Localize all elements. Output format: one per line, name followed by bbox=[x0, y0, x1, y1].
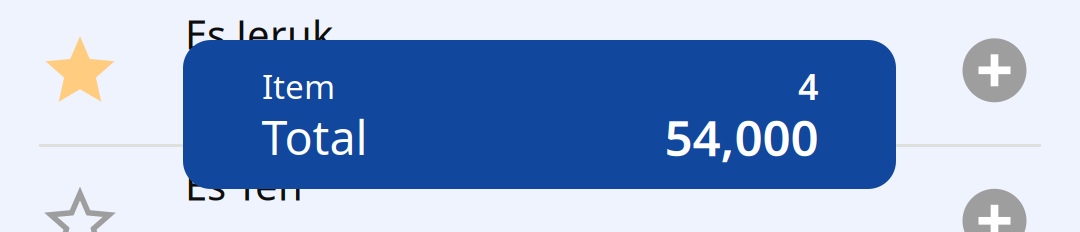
staticText: Item bbox=[262, 64, 335, 108]
button[interactable]: Add Es Jeruk bbox=[948, 24, 1040, 116]
staticText: Total bbox=[261, 106, 367, 168]
button[interactable]: Item bbox=[183, 40, 896, 189]
button[interactable]: Remove Es Jeruk from favourites bbox=[25, 14, 135, 124]
staticText: 4 bbox=[798, 62, 819, 110]
staticText: Rp 8.000 bbox=[185, 74, 321, 118]
button[interactable]: Es Teh bbox=[185, 166, 885, 232]
button[interactable]: Add Es Teh bbox=[948, 175, 1040, 232]
staticText: Es Jeruk bbox=[185, 7, 333, 60]
staticText: 54,000 bbox=[664, 104, 818, 170]
button[interactable]: Es Jeruk bbox=[185, 15, 885, 113]
button[interactable]: Add Es Teh to favourites bbox=[25, 165, 135, 232]
staticText: Es Teh bbox=[185, 158, 303, 211]
